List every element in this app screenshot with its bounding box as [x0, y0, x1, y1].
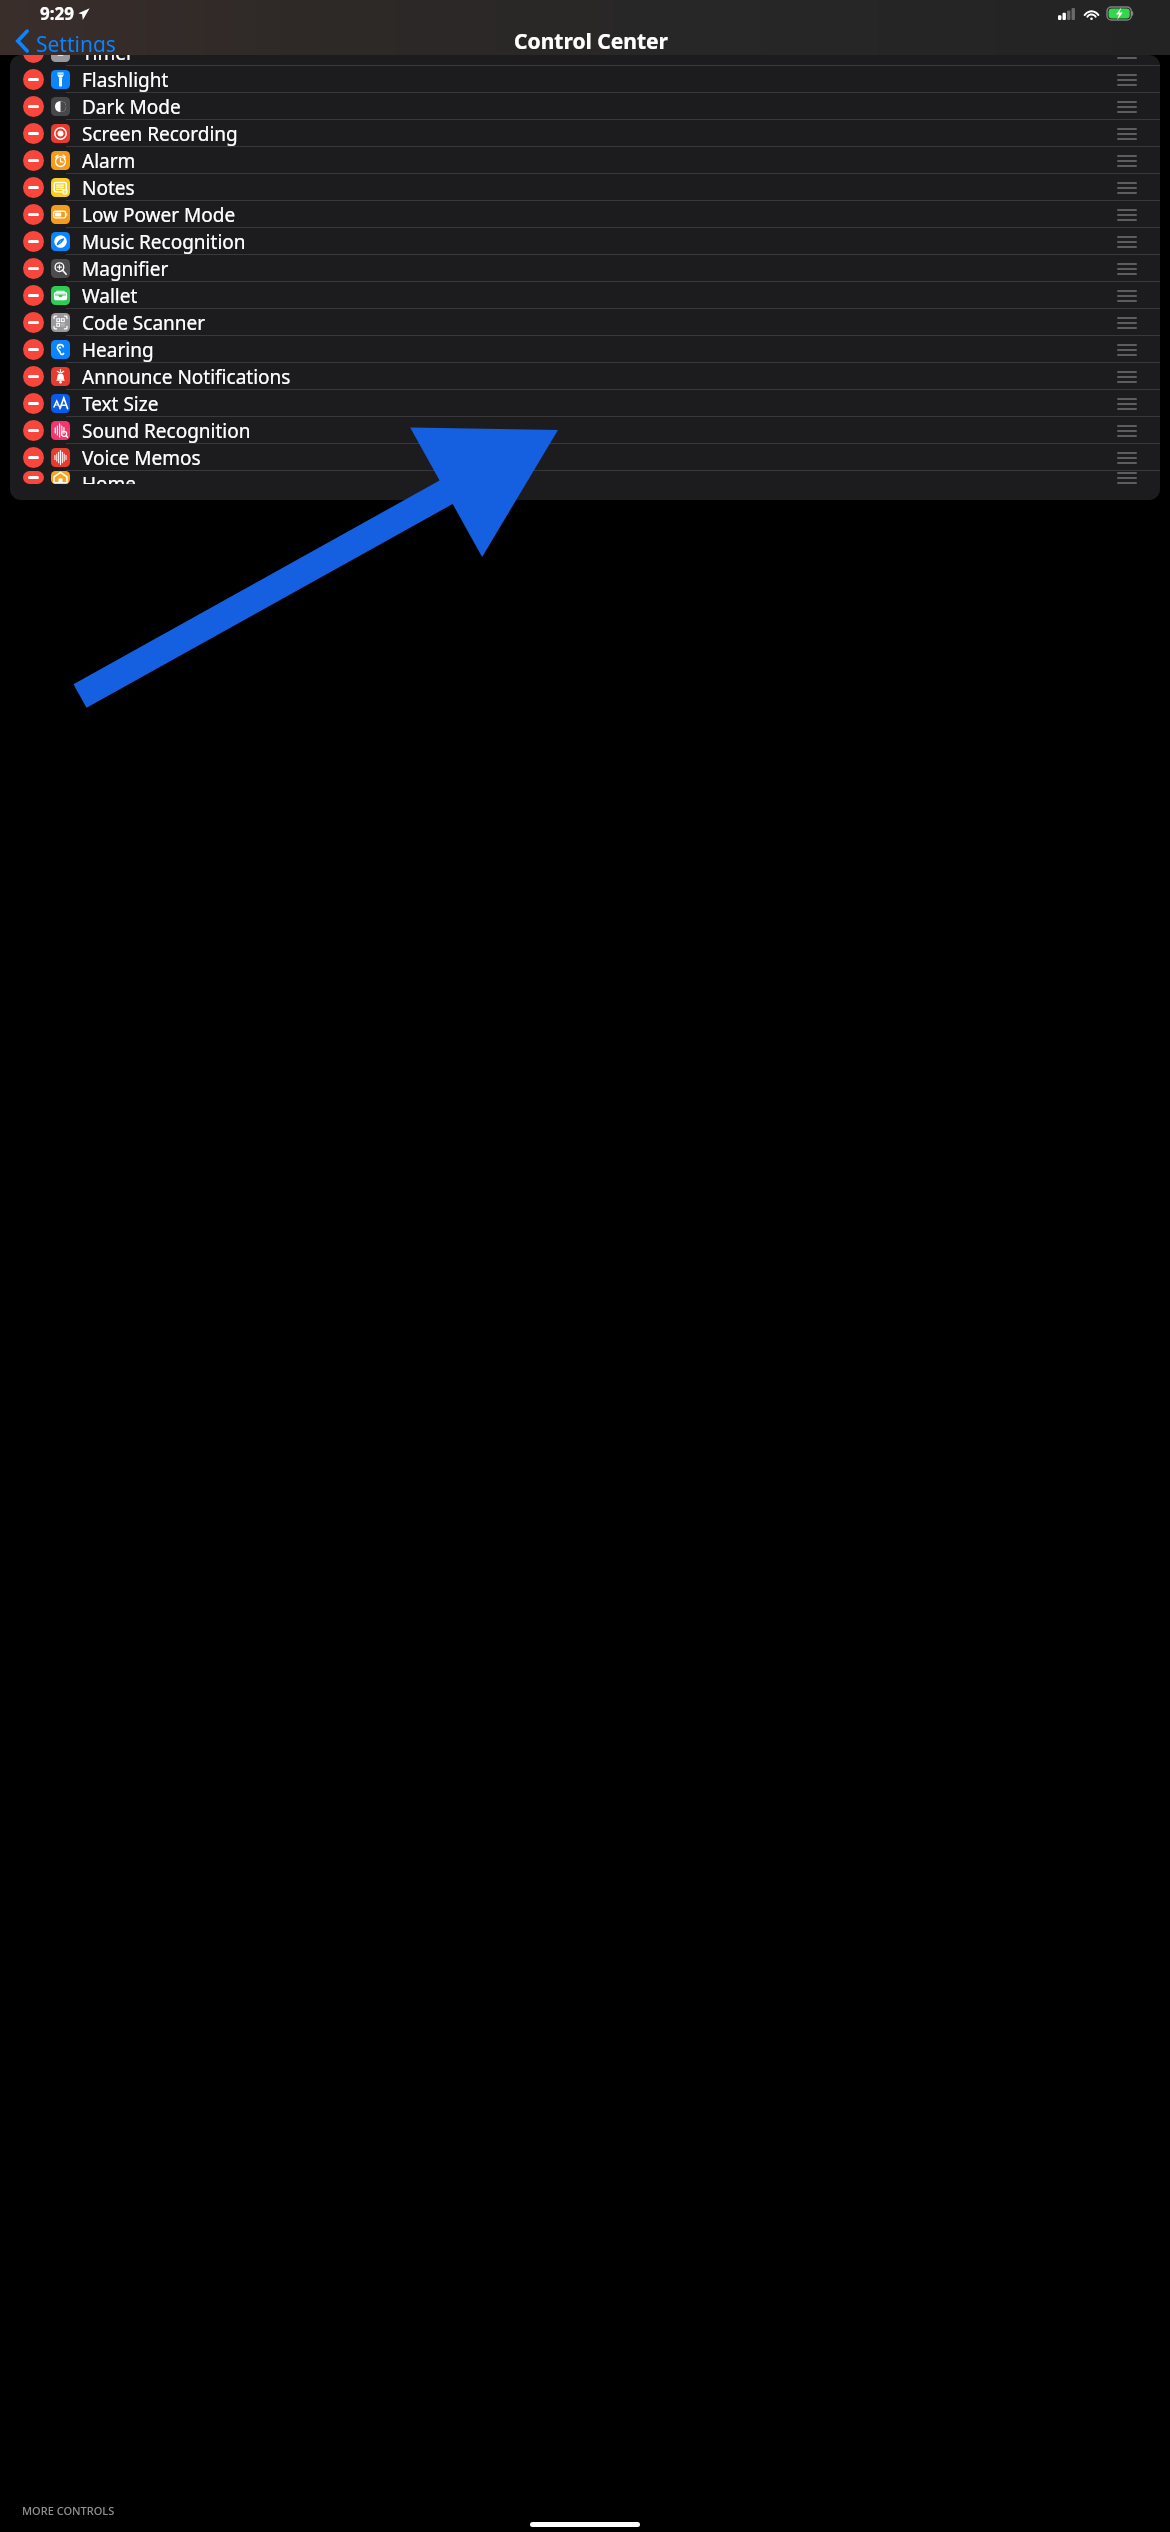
staticText: Voice Memos [82, 445, 201, 471]
button[interactable]: Remove Notes [10, 174, 1160, 201]
button[interactable]: Remove Hearing [23, 339, 44, 360]
button[interactable]: Reorder Wallet [1115, 286, 1139, 306]
button[interactable]: Remove Sound Recognition [10, 417, 1160, 444]
button[interactable]: Remove Voice Memos [23, 447, 44, 468]
staticText: Low Power Mode [82, 202, 236, 228]
button[interactable]: Reorder Code Scanner [1115, 313, 1139, 333]
staticText: Dark Mode [82, 94, 181, 120]
button[interactable]: Remove Magnifier [23, 258, 44, 279]
staticText: Flashlight [82, 67, 169, 93]
button[interactable]: Reorder Text Size [1115, 394, 1139, 414]
button[interactable]: Remove Screen Recording [10, 120, 1160, 147]
button[interactable]: Remove Timer [10, 55, 1160, 66]
staticText: 9:29 [40, 2, 74, 25]
staticText: Announce Notifications [82, 364, 291, 390]
button[interactable]: Remove Dark Mode [23, 96, 44, 117]
button[interactable]: Reorder Alarm [1115, 151, 1139, 171]
button[interactable]: Reorder Low Power Mode [1115, 205, 1139, 225]
button[interactable]: Reorder Timer [1115, 55, 1139, 63]
staticText: Magnifier [82, 256, 169, 282]
button[interactable]: Reorder Notes [1115, 178, 1139, 198]
button[interactable]: Remove Home [10, 471, 1160, 484]
button[interactable]: Remove Music Recognition [23, 231, 44, 252]
button[interactable]: Remove Magnifier [10, 255, 1160, 282]
button[interactable]: Remove Text Size [23, 393, 44, 414]
button[interactable]: Remove Sound Recognition [23, 420, 44, 441]
button[interactable]: Remove Music Recognition [10, 228, 1160, 255]
button[interactable]: Remove Hearing [10, 336, 1160, 363]
staticText: Code Scanner [82, 310, 206, 336]
button[interactable]: Remove Wallet [10, 282, 1160, 309]
button[interactable]: Remove Voice Memos [10, 444, 1160, 471]
button[interactable]: Reorder Hearing [1115, 340, 1139, 360]
button[interactable]: Remove Low Power Mode [23, 204, 44, 225]
button[interactable]: Reorder Announce Notifications [1115, 367, 1139, 387]
staticText: Wallet [82, 283, 138, 309]
staticText: Control Center [514, 27, 668, 55]
staticText: Home [82, 471, 137, 484]
button[interactable]: Remove Home [23, 471, 44, 484]
button[interactable]: Remove Alarm [10, 147, 1160, 174]
button[interactable]: Remove Code Scanner [10, 309, 1160, 336]
staticText: Alarm [82, 148, 136, 174]
staticText: MORE CONTROLS [22, 2503, 115, 2518]
button[interactable]: Reorder Music Recognition [1115, 232, 1139, 252]
button[interactable]: Remove Code Scanner [23, 312, 44, 333]
button[interactable]: Reorder Home [1115, 471, 1139, 484]
button[interactable]: Remove Flashlight [10, 66, 1160, 93]
button[interactable]: Remove Text Size [10, 390, 1160, 417]
button[interactable]: Reorder Flashlight [1115, 70, 1139, 90]
button[interactable]: Reorder Voice Memos [1115, 448, 1139, 468]
staticText: Text Size [82, 391, 159, 417]
button[interactable]: Remove Screen Recording [23, 123, 44, 144]
staticText: Timer [82, 55, 134, 66]
staticText: Hearing [82, 337, 154, 363]
button[interactable]: Reorder Screen Recording [1115, 124, 1139, 144]
staticText: Notes [82, 175, 135, 201]
button[interactable]: Remove Dark Mode [10, 93, 1160, 120]
button[interactable]: Remove Notes [23, 177, 44, 198]
staticText: Sound Recognition [82, 418, 251, 444]
staticText: Screen Recording [82, 121, 238, 147]
button[interactable]: Remove Alarm [23, 150, 44, 171]
button[interactable]: Remove Flashlight [23, 69, 44, 90]
button[interactable]: Remove Announce Notifications [23, 366, 44, 387]
button[interactable]: Remove Announce Notifications [10, 363, 1160, 390]
button[interactable]: Remove Low Power Mode [10, 201, 1160, 228]
button[interactable]: Reorder Magnifier [1115, 259, 1139, 279]
staticText: Settings [36, 30, 116, 52]
button[interactable]: Remove Timer [23, 55, 44, 63]
staticText: Music Recognition [82, 229, 246, 255]
button[interactable]: Remove Wallet [23, 285, 44, 306]
button[interactable]: Reorder Dark Mode [1115, 97, 1139, 117]
button[interactable]: Settings [10, 27, 122, 55]
button[interactable]: Reorder Sound Recognition [1115, 421, 1139, 441]
